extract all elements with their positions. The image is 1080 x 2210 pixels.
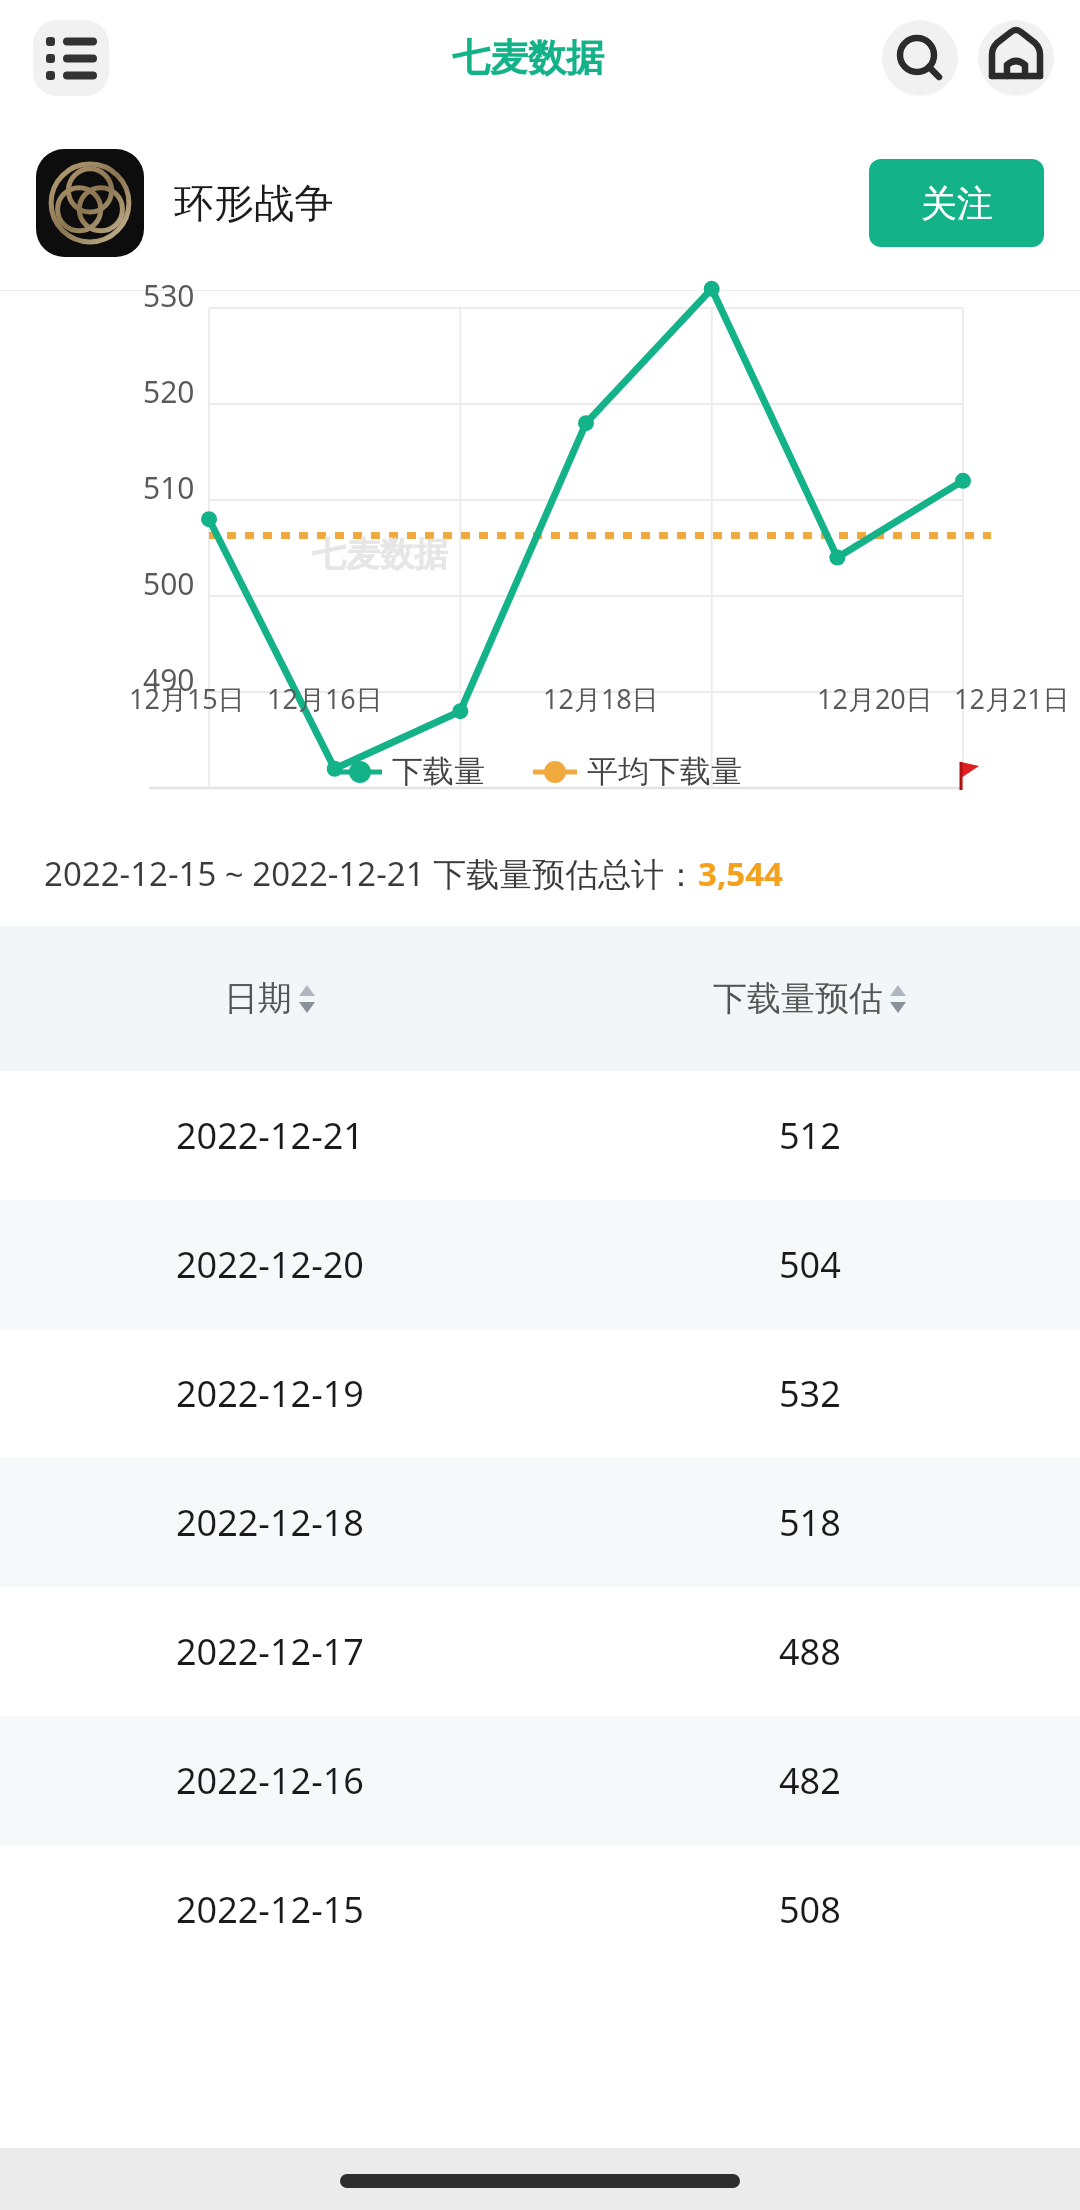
button[interactable]: 2022-12-19 <box>0 1329 1080 1458</box>
staticText: 12月18日 <box>543 680 659 717</box>
button[interactable]: 2022-12-20 <box>0 1200 1080 1329</box>
staticText: 关注 <box>921 181 993 226</box>
button[interactable]: 关注 <box>869 159 1044 247</box>
staticText: 512 <box>779 1111 841 1160</box>
staticText: 2022-12-18 <box>176 1498 364 1547</box>
staticText: 12月20日 <box>817 680 933 717</box>
button[interactable]: 平均下载量 <box>533 752 742 791</box>
staticText: 482 <box>779 1756 841 1805</box>
staticText: 500 <box>143 563 195 604</box>
staticText: 下载量预估 <box>713 977 883 1020</box>
staticText: 七麦数据 <box>452 34 604 82</box>
button[interactable]: 下载量 <box>338 752 485 791</box>
staticText: 508 <box>779 1885 841 1934</box>
button[interactable]: 2022-12-18 <box>0 1458 1080 1587</box>
staticText: 下载量 <box>392 752 485 791</box>
button[interactable] <box>36 149 144 257</box>
staticText: 490 <box>143 659 195 700</box>
staticText: 3,544 <box>698 851 783 896</box>
staticText: 2022-12-16 <box>176 1756 364 1805</box>
button[interactable]: 日期 <box>0 926 1080 1071</box>
button[interactable]: 2022-12-21 <box>0 1071 1080 1200</box>
staticText: 12月15日 <box>129 680 245 717</box>
staticText: 七麦数据 <box>312 533 448 576</box>
staticText: 532 <box>779 1369 841 1418</box>
button[interactable]: Menu <box>33 20 109 96</box>
staticText: 518 <box>779 1498 841 1547</box>
staticText: 日期 <box>224 977 292 1020</box>
staticText: 环形战争 <box>174 178 334 228</box>
staticText: 504 <box>779 1240 841 1289</box>
staticText: 2022-12-21 <box>176 1111 364 1160</box>
staticText: 520 <box>143 371 195 412</box>
staticText: 530 <box>143 275 195 316</box>
button[interactable]: 2022-12-16 <box>0 1716 1080 1845</box>
button[interactable]: 2022-12-17 <box>0 1587 1080 1716</box>
staticText: 2022-12-20 <box>176 1240 364 1289</box>
button[interactable]: Search <box>882 20 958 96</box>
staticText: 488 <box>779 1627 841 1676</box>
staticText: 平均下载量 <box>587 752 742 791</box>
staticText: 2022-12-15 <box>176 1885 364 1934</box>
button[interactable]: 2022-12-15 <box>0 1845 1080 1974</box>
staticText: 2022-12-19 <box>176 1369 364 1418</box>
button[interactable]: Home <box>978 20 1054 96</box>
staticText: 2022-12-15 ~ 2022-12-21 下载量预估总计： <box>44 851 698 896</box>
staticText: 510 <box>143 467 195 508</box>
staticText: 12月16日 <box>267 680 383 717</box>
staticText: 2022-12-17 <box>176 1627 364 1676</box>
staticText: 12月21日 <box>954 680 1070 717</box>
